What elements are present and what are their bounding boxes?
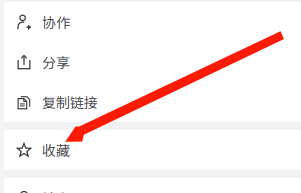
button[interactable]: 协作 [0, 2, 297, 42]
button[interactable]: 复制链接 [0, 82, 297, 122]
button[interactable]: 分享 [0, 42, 297, 82]
staticText: 分享 [42, 52, 70, 72]
button[interactable]: 收藏 [0, 130, 297, 170]
staticText: 收藏 [42, 140, 70, 160]
staticText: 复制链接 [42, 92, 98, 112]
staticText: 协作 [42, 12, 70, 32]
button[interactable]: 锁定 [0, 178, 297, 193]
staticText: 锁定 [42, 188, 70, 193]
